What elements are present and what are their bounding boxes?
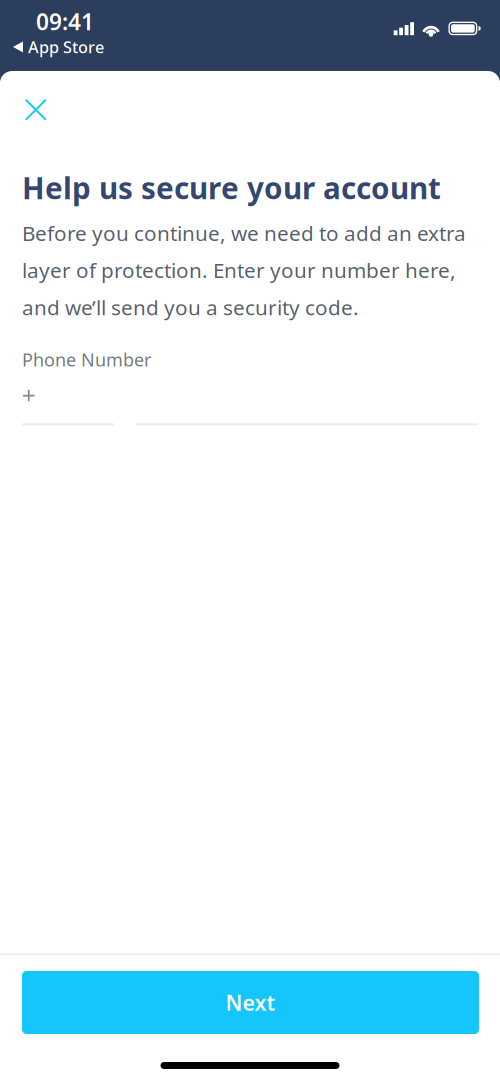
button[interactable]: Phone number <box>136 390 478 425</box>
button[interactable]: Close <box>0 88 62 131</box>
button[interactable]: Country code <box>22 390 114 425</box>
staticText: 09:41 <box>36 6 94 37</box>
staticText: Next <box>225 988 275 1017</box>
button[interactable]: App Store <box>13 36 104 58</box>
staticText: Phone Number <box>22 347 151 372</box>
staticText: App Store <box>28 36 104 58</box>
staticText: Before you continue, we need to add an e… <box>22 219 466 321</box>
button[interactable]: Next <box>0 955 500 1034</box>
staticText: Help us secure your account <box>22 167 441 208</box>
